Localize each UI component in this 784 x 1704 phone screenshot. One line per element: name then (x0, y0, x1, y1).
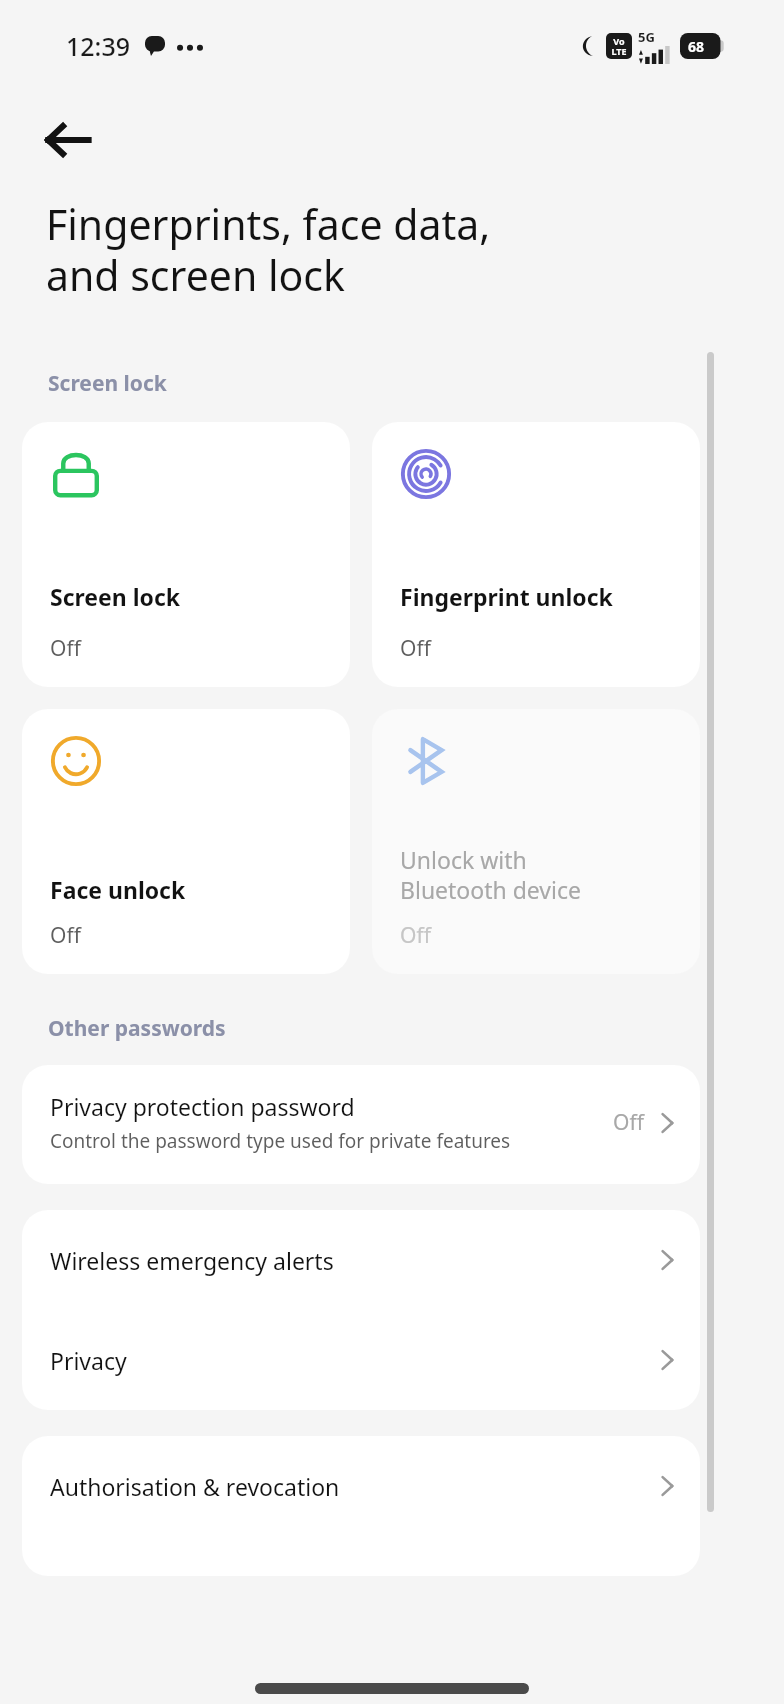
staticText: Off (50, 634, 81, 663)
button[interactable]: Privacy protection password (22, 1065, 700, 1184)
button[interactable]: Fingerprint unlock (372, 422, 700, 687)
staticText: Vo LTE (611, 35, 627, 57)
staticText: 12:39 (66, 29, 131, 63)
staticText: Authorisation & revocation (50, 1471, 656, 1502)
staticText: 5G (638, 28, 655, 46)
staticText: Screen lock (50, 581, 181, 612)
staticText: 68 (688, 37, 705, 56)
staticText: Privacy (50, 1345, 656, 1376)
button[interactable]: Face unlock (22, 709, 350, 974)
staticText: Unlock with Bluetooth device (400, 844, 581, 905)
staticText: Off (400, 921, 431, 950)
button[interactable]: Wireless emergency alerts (22, 1210, 700, 1310)
button[interactable]: Screen lock (22, 422, 350, 687)
staticText: Wireless emergency alerts (50, 1245, 656, 1276)
staticText: Screen lock (48, 369, 167, 398)
button[interactable]: Authorisation & revocation (22, 1436, 700, 1536)
staticText: Privacy protection password (50, 1091, 355, 1122)
button[interactable]: Privacy (22, 1310, 700, 1410)
staticText: Other passwords (48, 1014, 226, 1043)
staticText: Face unlock (50, 874, 186, 905)
staticText: Fingerprint unlock (400, 581, 613, 612)
staticText: Control the password type used for priva… (50, 1128, 511, 1154)
button[interactable]: Back (30, 102, 106, 178)
button[interactable]: Unlock with Bluetooth device (372, 709, 700, 974)
staticText: Off (50, 921, 81, 950)
staticText: Off (613, 1108, 644, 1137)
staticText: Fingerprints, face data, and screen lock (46, 196, 491, 303)
staticText: Off (400, 634, 431, 663)
